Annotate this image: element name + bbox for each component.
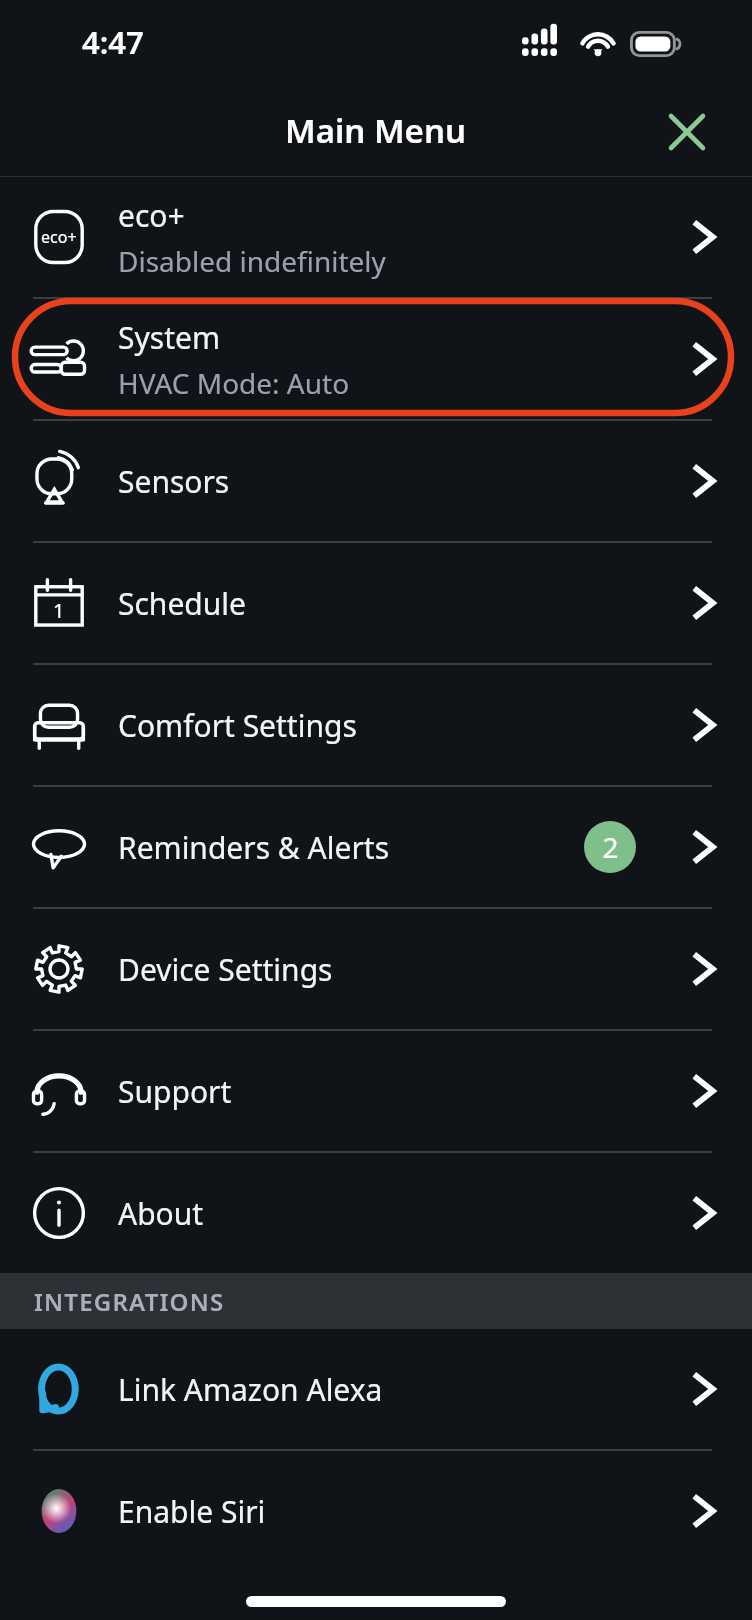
staticText: Reminders & Alerts <box>118 827 390 868</box>
staticText: Schedule <box>118 583 246 624</box>
staticText: Device Settings <box>118 949 333 990</box>
button[interactable]: System <box>0 299 752 419</box>
staticText: About <box>118 1193 204 1234</box>
staticText: HVAC Mode: Auto <box>118 364 350 402</box>
staticText: Link Amazon Alexa <box>118 1369 383 1410</box>
button[interactable]: Support <box>0 1031 752 1151</box>
staticText: Comfort Settings <box>118 705 357 746</box>
button[interactable]: Enable Siri <box>0 1451 752 1571</box>
button[interactable]: 1 <box>0 543 752 663</box>
staticText: Disabled indefinitely <box>118 242 386 280</box>
staticText: Support <box>118 1071 232 1112</box>
staticText: 2 <box>602 828 619 866</box>
button[interactable]: Link Amazon Alexa <box>0 1329 752 1449</box>
staticText: eco+ <box>41 226 77 248</box>
staticText: Enable Siri <box>118 1491 266 1532</box>
button[interactable]: Reminders & Alerts <box>0 787 752 907</box>
button[interactable]: eco+ <box>0 177 752 297</box>
button[interactable]: Comfort Settings <box>0 665 752 785</box>
button[interactable]: Sensors <box>0 421 752 541</box>
staticText: eco+ <box>118 195 185 236</box>
staticText: Sensors <box>118 461 230 502</box>
button[interactable]: About <box>0 1153 752 1273</box>
button[interactable]: Device Settings <box>0 909 752 1029</box>
staticText: Main Menu <box>285 108 467 153</box>
staticText: INTEGRATIONS <box>34 1285 225 1318</box>
staticText: 4:47 <box>82 21 144 63</box>
staticText: System <box>118 317 220 358</box>
button[interactable]: Close <box>656 101 718 163</box>
staticText: 1 <box>53 597 65 624</box>
